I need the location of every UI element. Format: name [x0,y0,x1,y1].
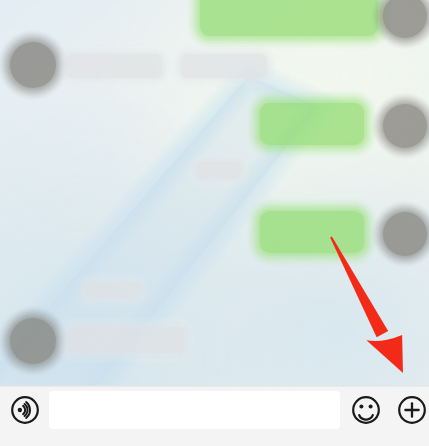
button[interactable]: Emoji [352,396,380,424]
button[interactable]: Voice input [11,396,39,424]
button[interactable]: More [398,396,426,424]
